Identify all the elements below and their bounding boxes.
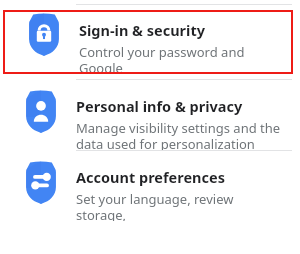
button[interactable]: Sign-in and security	[3, 10, 293, 74]
button[interactable]: Account preferences	[0, 151, 300, 221]
staticText: Set your language, review storage, and d…	[76, 190, 286, 221]
staticText: Account preferences	[76, 167, 225, 187]
staticText: Manage visibility settings and the data …	[76, 119, 281, 150]
staticText: Control your password and Google Account…	[79, 43, 279, 74]
other: Account preferences	[23, 160, 59, 205]
button[interactable]: Personal info and privacy	[0, 80, 300, 150]
staticText: Sign-in & security	[79, 20, 205, 40]
other: Sign-in and security	[26, 12, 62, 57]
other: Personal info and privacy	[23, 89, 59, 134]
staticText: Personal info & privacy	[76, 96, 243, 116]
